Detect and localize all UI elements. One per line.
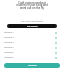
button[interactable]: Continue [4,63,60,68]
button[interactable]: Workout 5 [4,50,60,55]
button[interactable]: Workout 2 [4,35,60,40]
staticText: Workout 6 [4,56,14,59]
button[interactable]: Workout 6 [4,55,60,60]
staticText: Workout 3 [4,41,14,44]
button[interactable]: Workout 4 [4,45,60,50]
staticText: Craft custom workout routines in just a … [0,1,64,10]
staticText: Get started [27,25,38,28]
staticText: Workout 2 [4,36,14,39]
button[interactable]: Workout 3 [4,40,60,45]
staticText: Workout 1 [4,31,14,34]
staticText: Continue [28,64,37,67]
staticText: Let's start your journey [0,20,64,23]
button[interactable]: Get started [7,24,57,28]
staticText: Workout 5 [4,51,14,54]
button[interactable]: Workout 1 [4,30,60,35]
staticText: Workout 4 [4,46,14,49]
